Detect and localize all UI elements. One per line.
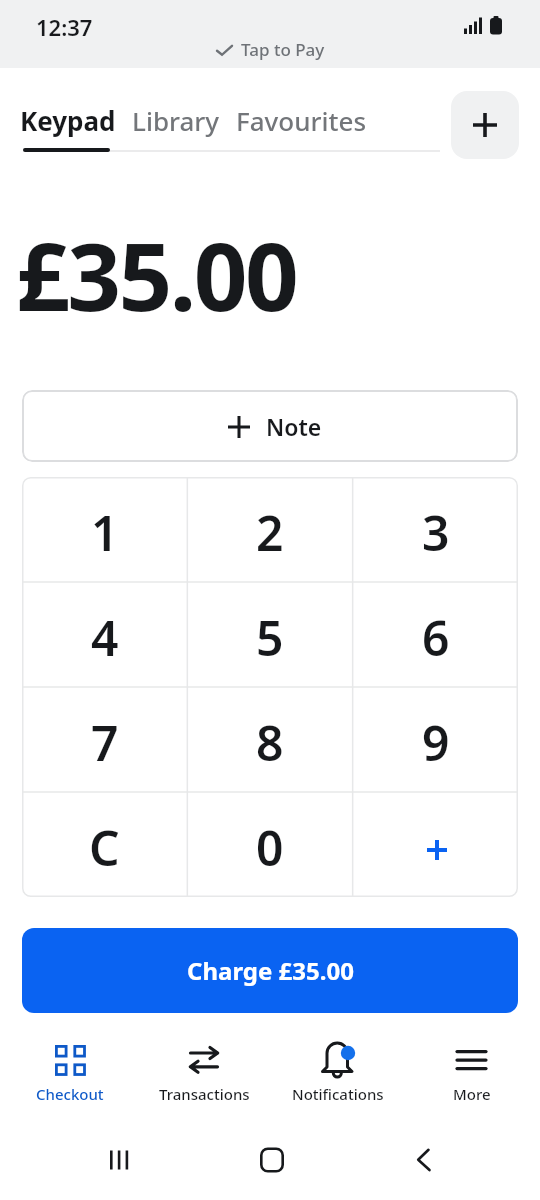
button[interactable]: 5 — [187, 582, 352, 687]
button[interactable]: 7 — [22, 687, 187, 792]
staticText: 3 — [422, 500, 450, 565]
button[interactable] — [403, 1140, 443, 1180]
staticText: £35.00 — [16, 211, 297, 321]
staticText: 1 — [91, 500, 119, 565]
button[interactable]: 9 — [353, 687, 518, 792]
button[interactable] — [278, 1036, 398, 1106]
button[interactable] — [412, 1036, 532, 1106]
button[interactable]: Keypad — [20, 103, 116, 137]
staticText: 4 — [91, 605, 119, 670]
staticText: Tap to Pay — [241, 38, 325, 61]
button[interactable]: Tap to Pay — [216, 38, 325, 61]
staticText: 9 — [422, 710, 450, 775]
staticText: 7 — [91, 710, 119, 775]
staticText: Note — [266, 411, 322, 442]
staticText: 2 — [256, 500, 284, 565]
staticText: Transactions — [159, 1084, 250, 1104]
staticText: 0 — [256, 815, 284, 880]
button[interactable]: 0 — [187, 792, 352, 897]
button[interactable] — [144, 1036, 264, 1106]
button[interactable]: 1 — [22, 477, 187, 582]
button[interactable] — [10, 1036, 130, 1106]
button[interactable]: Charge £35.00 — [22, 928, 518, 1013]
button[interactable]: 3 — [353, 477, 518, 582]
button[interactable]: 8 — [187, 687, 352, 792]
button[interactable]: C — [22, 792, 187, 897]
staticText: Checkout — [36, 1084, 104, 1104]
staticText: More — [453, 1084, 491, 1104]
staticText: Notifications — [292, 1084, 384, 1104]
staticText: 12:37 — [36, 12, 93, 38]
staticText: C — [89, 815, 120, 880]
staticText: Charge £35.00 — [187, 954, 354, 987]
staticText: 6 — [422, 605, 450, 670]
button[interactable] — [451, 91, 519, 159]
button[interactable]: 4 — [22, 582, 187, 687]
button[interactable]: Favourites — [236, 103, 367, 137]
staticText: Favourites — [236, 103, 367, 137]
button[interactable]: Library — [132, 103, 220, 137]
button[interactable]: Note — [22, 390, 518, 462]
button[interactable] — [99, 1140, 139, 1180]
staticText: Keypad — [20, 103, 116, 137]
staticText: 5 — [256, 605, 284, 670]
staticText: Library — [132, 103, 220, 137]
button[interactable]: 6 — [353, 582, 518, 687]
button[interactable]: 2 — [187, 477, 352, 582]
button[interactable] — [252, 1140, 292, 1180]
button[interactable] — [353, 792, 518, 897]
staticText: 8 — [256, 710, 284, 775]
